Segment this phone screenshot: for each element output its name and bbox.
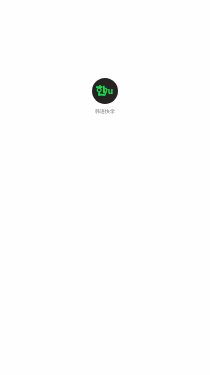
staticText: yu: [103, 85, 113, 96]
staticText: 韩语快学: [95, 108, 115, 114]
other: 韩语快学 app logo: [92, 78, 118, 104]
